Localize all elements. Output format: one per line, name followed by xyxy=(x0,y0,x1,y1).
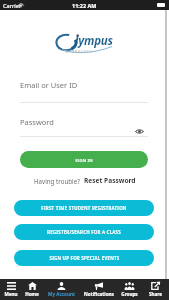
button[interactable]: Notifications xyxy=(80,279,117,300)
staticText: 11:22 AM xyxy=(72,2,97,9)
staticText: Carrier xyxy=(3,2,22,9)
staticText: G Y M N A S T I C S xyxy=(66,50,92,54)
staticText: Having trouble? xyxy=(34,177,80,185)
button[interactable]: Menu xyxy=(0,279,22,300)
staticText: Menu xyxy=(4,291,18,297)
staticText: Email or User ID xyxy=(20,80,78,90)
staticText: Share xyxy=(149,291,162,297)
staticText: REGISTER/SEARCH FOR A CLASS xyxy=(47,229,121,235)
staticText: Notifications xyxy=(84,291,114,297)
button[interactable]: Groups xyxy=(117,279,142,300)
staticText: FIRST TIME STUDENT REGISTRATION xyxy=(41,205,127,211)
staticText: SIGN IN xyxy=(75,157,93,163)
button[interactable]: SIGN IN xyxy=(20,151,148,168)
staticText: Home xyxy=(25,291,39,297)
staticText: SIGN UP FOR SPECIAL EVENTS xyxy=(49,255,120,261)
button[interactable]: Show password xyxy=(135,127,144,136)
staticText: Reset Password xyxy=(84,176,136,185)
staticText: lympus xyxy=(75,33,113,49)
button[interactable]: SIGN UP FOR SPECIAL EVENTS xyxy=(14,250,154,266)
button[interactable]: Home xyxy=(22,279,42,300)
button[interactable]: My Account xyxy=(42,279,80,300)
button[interactable]: FIRST TIME STUDENT REGISTRATION xyxy=(14,200,154,216)
staticText: Password xyxy=(20,117,54,127)
button[interactable]: Reset Password xyxy=(84,176,136,185)
staticText: My Account xyxy=(48,291,75,297)
button[interactable]: Share xyxy=(142,279,169,300)
staticText: Groups xyxy=(121,291,138,297)
button[interactable]: REGISTER/SEARCH FOR A CLASS xyxy=(14,224,154,240)
